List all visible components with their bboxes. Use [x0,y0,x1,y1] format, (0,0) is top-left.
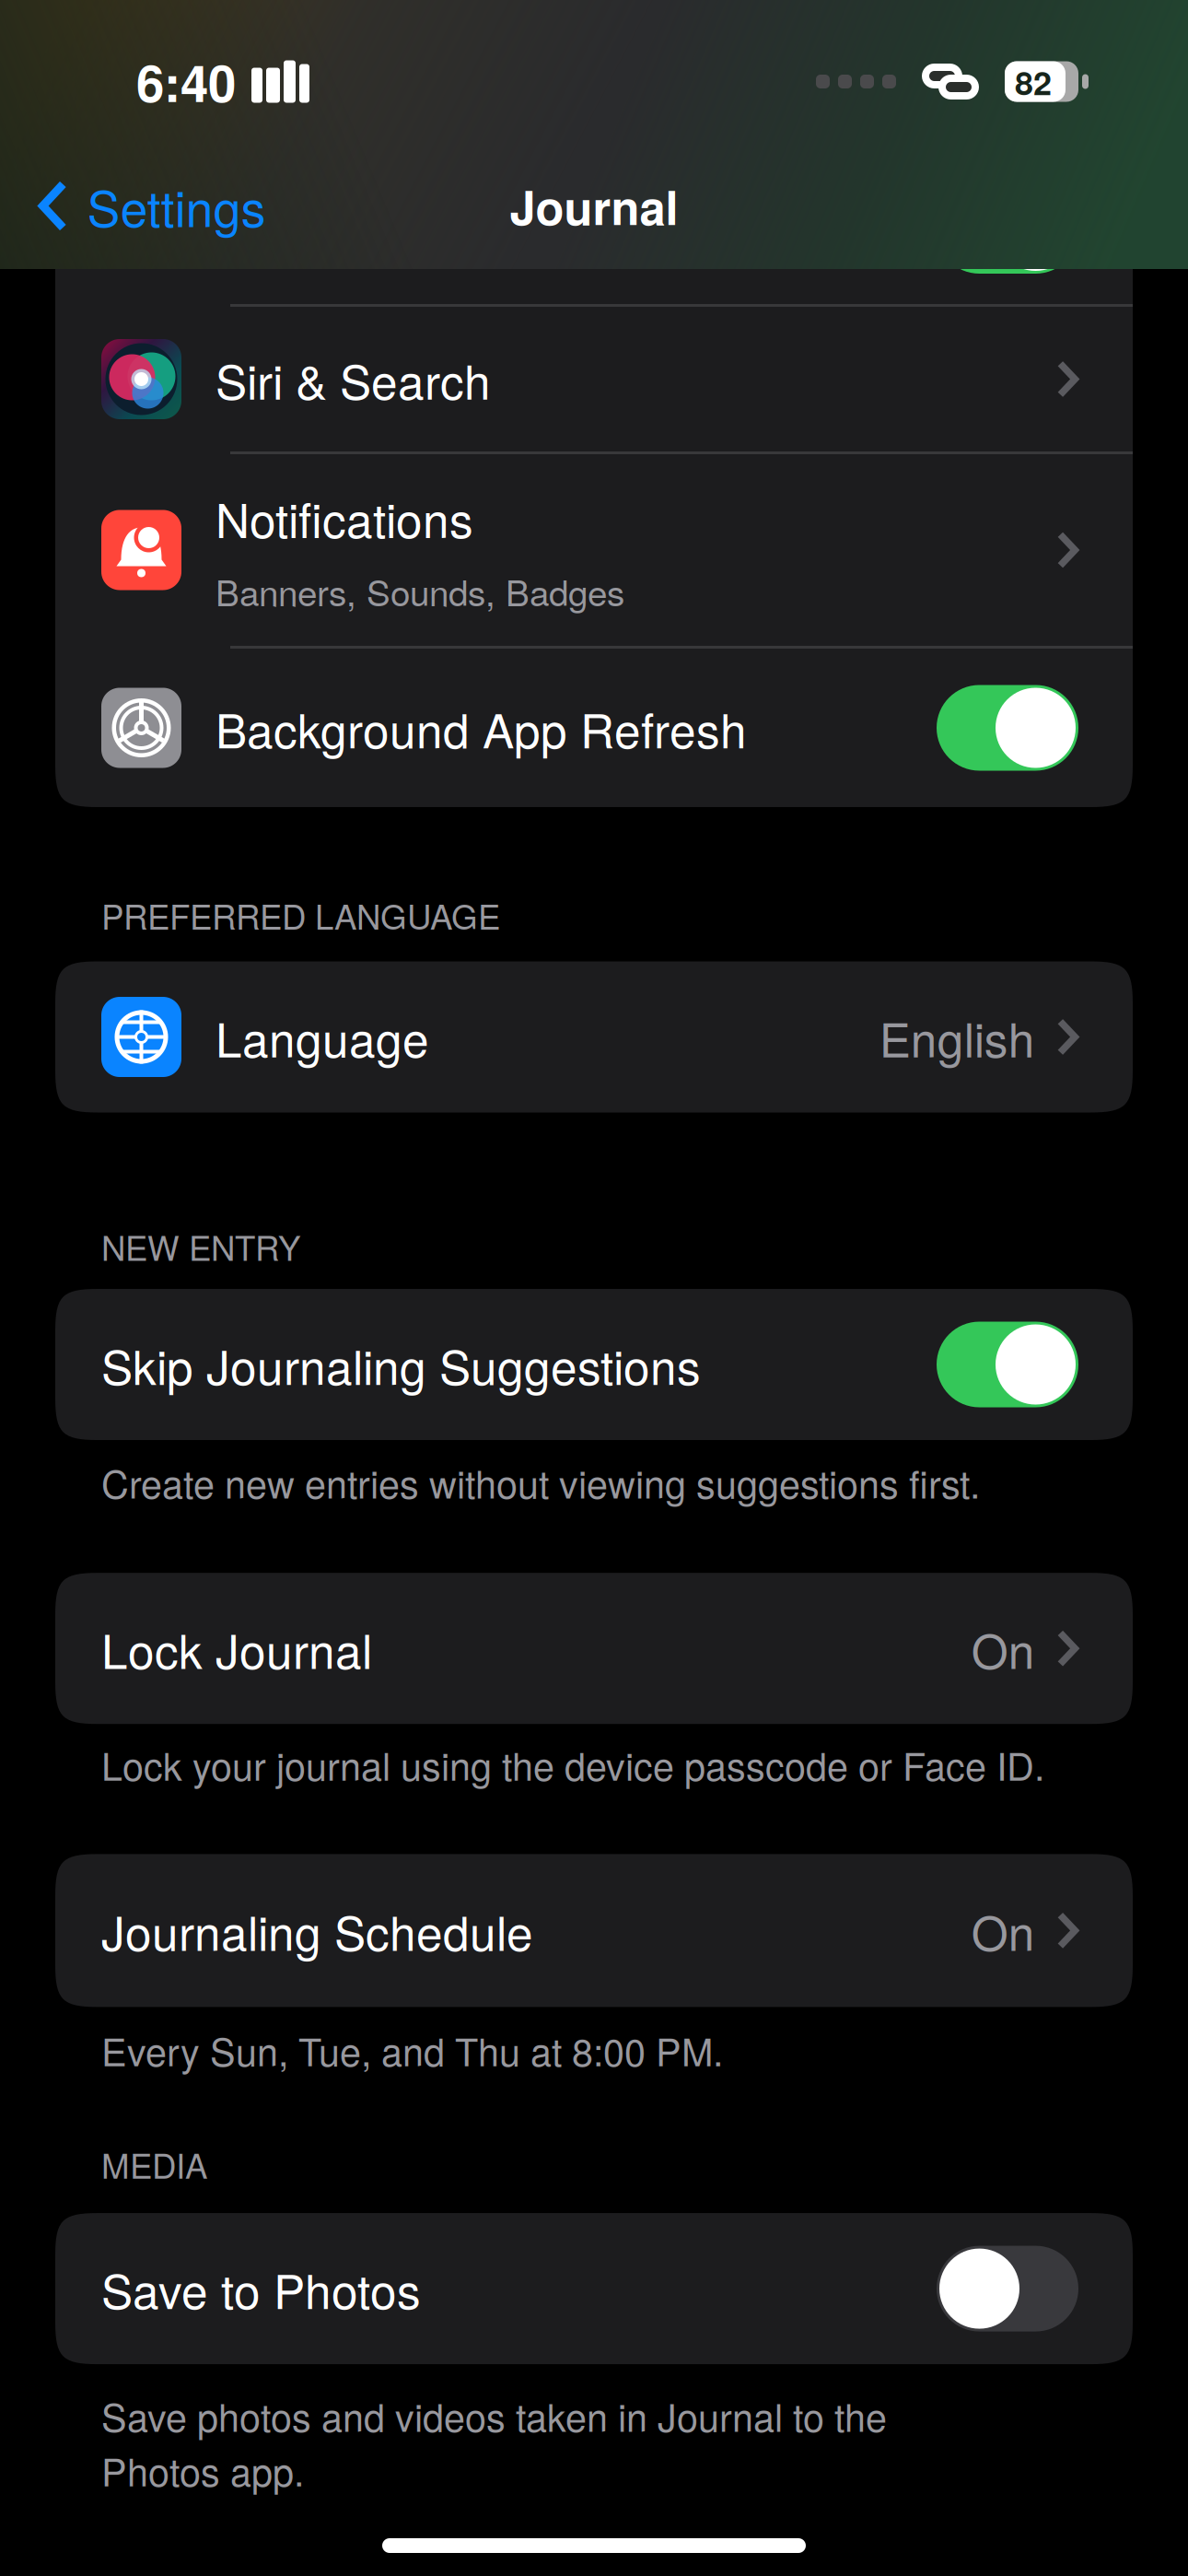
staticText: Language [215,1003,429,1071]
button[interactable]: Notifications [55,454,1133,646]
staticText: Save to Photos [101,2255,421,2322]
staticText: Create new entries without viewing sugge… [101,1455,980,1509]
staticText: Every Sun, Tue, and Thu at 8:00 PM. [101,2023,723,2077]
staticText: Photos app. [101,2443,304,2497]
button[interactable]: Save to Photos [55,2213,1133,2364]
staticText: MEDIA [101,2140,207,2188]
staticText: NEW ENTRY [101,1222,300,1270]
staticText: Journaling Schedule [101,1897,533,1964]
button[interactable]: Language [55,961,1133,1112]
staticText: PREFERRED LANGUAGE [101,891,500,939]
staticText: 6:40 [136,46,236,118]
button[interactable]: Background App Refresh [55,649,1133,807]
staticText: Settings [87,171,266,241]
button[interactable]: Lock Journal [55,1573,1133,1724]
staticText: Journal [510,172,678,239]
staticText: Lock Journal [101,1615,372,1682]
staticText: Siri & Search [215,345,491,413]
staticText: 82 [1015,58,1052,105]
staticText: On [971,1897,1035,1964]
button[interactable]: Siri & Search [55,307,1133,451]
staticText: English [879,1003,1035,1071]
button[interactable]: Skip Journaling Suggestions [55,1289,1133,1440]
staticText: On [971,1615,1035,1682]
staticText: Notifications [215,484,473,551]
staticText: Lock your journal using the device passc… [101,1737,1044,1791]
button[interactable]: Journaling Schedule [55,1854,1133,2007]
button[interactable]: Settings [0,143,288,269]
staticText: Background App Refresh [215,694,747,762]
staticText: Skip Journaling Suggestions [101,1331,701,1398]
staticText: Save photos and videos taken in Journal … [101,2388,887,2443]
staticText: Banners, Sounds, Badges [215,565,624,616]
